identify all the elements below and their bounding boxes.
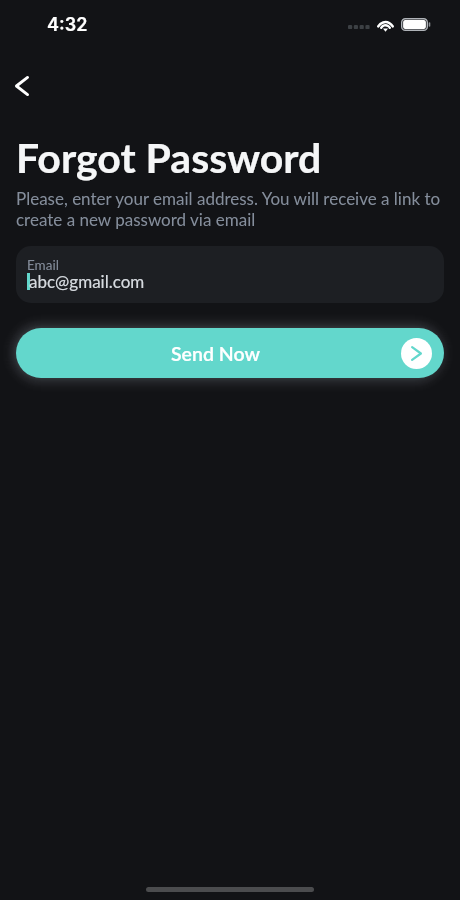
button[interactable]: Send Now bbox=[16, 328, 444, 378]
button[interactable]: Back bbox=[0, 62, 46, 110]
button[interactable]: Email bbox=[16, 246, 444, 303]
staticText: abc@gmail.com bbox=[29, 271, 145, 291]
staticText: Please, enter your email address. You wi… bbox=[16, 188, 441, 230]
staticText: Forgot Password bbox=[16, 133, 322, 182]
staticText: Email bbox=[27, 257, 59, 273]
staticText: 4:32 bbox=[47, 14, 88, 36]
staticText: Send Now bbox=[171, 342, 260, 365]
